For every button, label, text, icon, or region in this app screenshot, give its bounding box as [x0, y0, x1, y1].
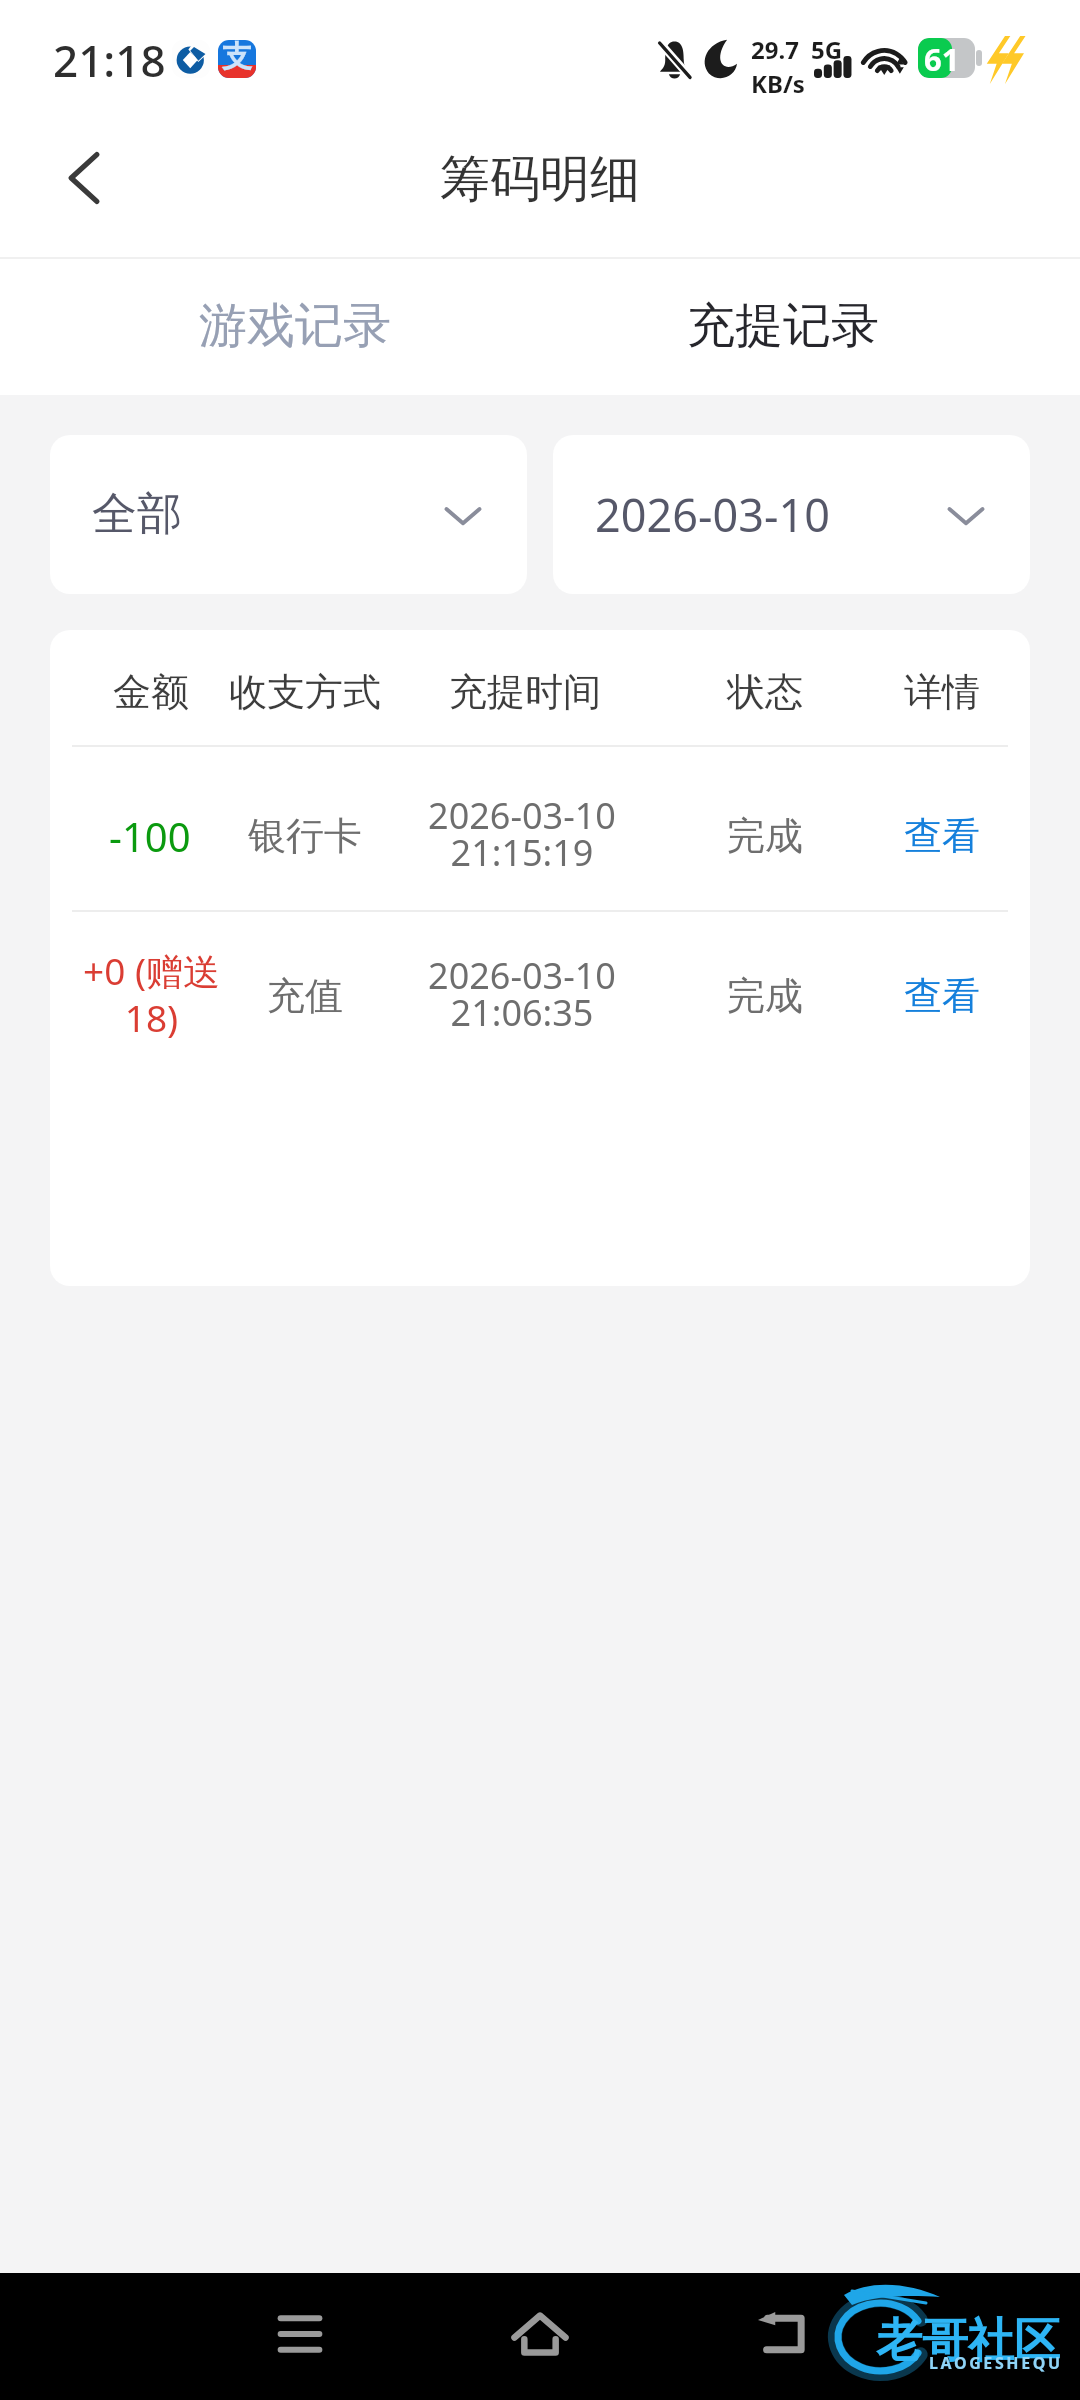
button[interactable]: Back [28, 122, 140, 234]
staticText: 详情 [904, 668, 980, 716]
staticText: 查看 [904, 972, 980, 1020]
button[interactable]: 查看 [852, 781, 1030, 891]
staticText: 5G [811, 33, 843, 66]
staticText: LAOGESHEQU [929, 2352, 1063, 2374]
staticText: +0 (赠送 18) [59, 945, 244, 1043]
staticText: KB/s [751, 67, 805, 100]
staticText: 状态 [727, 668, 803, 716]
staticText: 2026-03-10 21:06:35 [428, 951, 616, 1037]
staticText: 2026-03-10 21:15:19 [428, 791, 616, 877]
button[interactable]: Recent apps [240, 2273, 360, 2400]
staticText: 全部 [92, 486, 182, 543]
staticText: 29.7 [751, 33, 799, 66]
button[interactable]: Home [480, 2273, 600, 2400]
staticText: 完成 [727, 812, 803, 860]
staticText: 支 [222, 40, 252, 76]
staticText: 收支方式 [229, 668, 381, 716]
button[interactable]: 全部 [50, 435, 527, 594]
staticText: 21:18 [53, 30, 166, 90]
staticText: 金额 [113, 668, 189, 716]
staticText: 充值 [267, 972, 343, 1020]
button[interactable]: 游戏记录 [145, 262, 445, 390]
button[interactable]: Back [721, 2273, 841, 2400]
staticText: 查看 [904, 812, 980, 860]
staticText: 完成 [727, 972, 803, 1020]
staticText: 充提记录 [687, 296, 879, 356]
button[interactable]: 查看 [852, 941, 1030, 1051]
staticText: 老哥社区 [876, 2312, 1060, 2370]
staticText: 筹码明细 [440, 148, 640, 211]
staticText: 游戏记录 [199, 296, 391, 356]
staticText: 61 [924, 38, 960, 78]
staticText: 充提时间 [449, 668, 601, 716]
button[interactable]: 2026-03-10 [553, 435, 1030, 594]
staticText: 2026-03-10 [595, 484, 830, 545]
button[interactable]: 充提记录 [633, 262, 933, 390]
staticText: -100 [109, 809, 191, 863]
staticText: 银行卡 [248, 812, 362, 860]
